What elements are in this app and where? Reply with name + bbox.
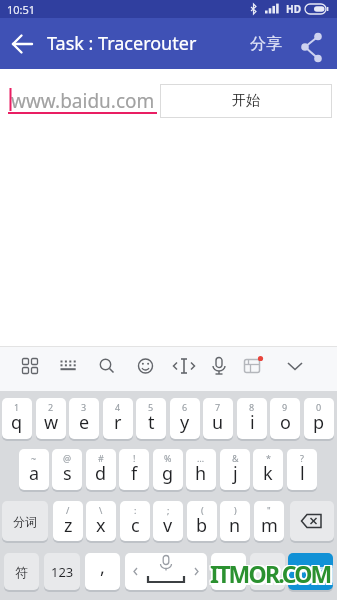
button[interactable]: 0: [304, 398, 334, 439]
button[interactable]: ): [220, 501, 250, 541]
button[interactable]: !: [119, 449, 149, 490]
button[interactable]: ": [254, 501, 284, 541]
staticText: r: [114, 410, 122, 435]
staticText: %: [164, 452, 172, 464]
staticText: g: [162, 461, 174, 486]
button[interactable]: [90, 348, 124, 388]
staticText: 中: [262, 570, 274, 585]
button[interactable]: 2: [36, 398, 66, 439]
button[interactable]: ;: [153, 501, 183, 541]
button[interactable]: [278, 348, 312, 388]
button[interactable]: 下一项: [288, 553, 333, 590]
staticText: 0: [316, 401, 322, 413]
staticText: v: [163, 513, 173, 538]
button[interactable]: 123: [44, 553, 80, 590]
button[interactable]: [13, 348, 47, 388]
button[interactable]: [125, 553, 207, 590]
staticText: h: [195, 461, 207, 486]
staticText: 5: [148, 401, 154, 413]
staticText: 10:51: [7, 2, 36, 17]
button[interactable]: 8: [237, 398, 267, 439]
staticText: 4: [115, 401, 121, 413]
staticText: ;: [167, 504, 170, 516]
staticText: 符: [15, 564, 28, 580]
button[interactable]: 3: [69, 398, 99, 439]
button[interactable]: …: [186, 449, 216, 490]
button[interactable]: *: [253, 449, 283, 490]
staticText: 分词: [13, 514, 37, 529]
button[interactable]: 6: [170, 398, 200, 439]
button[interactable]: 1: [2, 398, 32, 439]
button[interactable]: #: [86, 449, 116, 490]
staticText: ITMOR.COM: [212, 560, 333, 591]
staticText: (: [201, 504, 204, 516]
button[interactable]: [298, 30, 328, 64]
button[interactable]: 4: [103, 398, 133, 439]
staticText: e: [79, 410, 90, 435]
button[interactable]: 9: [270, 398, 300, 439]
staticText: z: [64, 513, 73, 538]
button[interactable]: 符: [4, 553, 39, 590]
button[interactable]: &: [220, 449, 250, 490]
staticText: ): [234, 504, 237, 516]
staticText: 123: [51, 563, 74, 581]
staticText: :: [134, 504, 137, 516]
staticText: 1: [14, 401, 20, 413]
button[interactable]: 7: [203, 398, 233, 439]
staticText: ITMOR.COM: [212, 558, 333, 589]
button[interactable]: [290, 501, 334, 541]
staticText: \: [99, 504, 103, 516]
staticText: 开始: [232, 92, 260, 110]
staticText: !: [133, 452, 136, 464]
staticText: /: [66, 504, 70, 516]
button[interactable]: [128, 348, 162, 388]
staticText: ITMOR.COM: [212, 557, 333, 588]
button[interactable]: 中: [250, 553, 285, 590]
staticText: ": [267, 504, 271, 516]
staticText: 。: [222, 570, 235, 586]
button[interactable]: 分享: [250, 34, 282, 54]
button[interactable]: (: [187, 501, 217, 541]
staticText: 7: [215, 401, 221, 413]
staticText: ?: [300, 452, 304, 464]
staticText: www.baidu.com: [11, 88, 155, 114]
staticText: ~: [31, 452, 37, 464]
button[interactable]: www.baidu.com: [8, 88, 157, 114]
staticText: o: [280, 410, 291, 435]
button[interactable]: ~: [19, 449, 49, 490]
button[interactable]: %: [153, 449, 183, 490]
button[interactable]: [8, 29, 38, 59]
button[interactable]: [202, 348, 236, 388]
staticText: m: [261, 513, 278, 538]
staticText: k: [263, 461, 273, 486]
button[interactable]: ,: [85, 553, 120, 590]
staticText: s: [63, 461, 72, 486]
staticText: c: [131, 513, 140, 538]
button[interactable]: 5: [136, 398, 166, 439]
staticText: p: [313, 410, 325, 435]
staticText: y: [180, 410, 190, 435]
staticText: 下一项: [296, 565, 326, 578]
button[interactable]: 开始: [160, 84, 332, 118]
staticText: #: [98, 452, 104, 464]
staticText: w: [44, 410, 59, 435]
button[interactable]: [235, 348, 269, 388]
button[interactable]: \: [86, 501, 116, 541]
button[interactable]: :: [120, 501, 150, 541]
staticText: 分享: [250, 34, 282, 54]
button[interactable]: [51, 348, 85, 388]
button[interactable]: 分词: [2, 501, 48, 541]
staticText: …: [197, 452, 205, 464]
staticText: ITMOR.COM: [209, 557, 330, 588]
staticText: 3: [81, 401, 87, 413]
staticText: 2: [48, 401, 54, 413]
button[interactable]: @: [52, 449, 82, 490]
staticText: ,: [100, 555, 105, 580]
button[interactable]: 。: [211, 553, 246, 590]
button[interactable]: ?: [287, 449, 317, 490]
staticText: Task : Tracerouter: [47, 31, 197, 56]
staticText: ITMOR.COM: [209, 558, 330, 589]
button[interactable]: /: [53, 501, 83, 541]
staticText: ITMOR.COM: [209, 560, 330, 591]
button[interactable]: [167, 348, 201, 388]
